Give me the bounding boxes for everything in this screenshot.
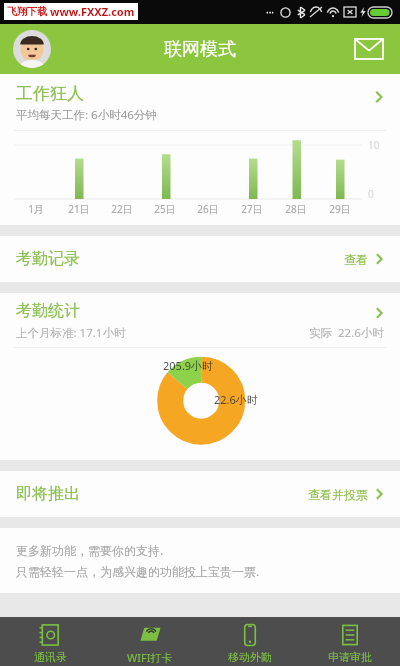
staticText: 22日 xyxy=(111,202,133,216)
button[interactable]: Messages xyxy=(352,32,386,66)
staticText: 飞翔下载 xyxy=(7,5,47,18)
staticText: 即将推出 xyxy=(16,484,80,504)
staticText: 查看并投票 xyxy=(308,487,368,502)
staticText: 上个月标准: 17.1小时 xyxy=(16,325,126,341)
staticText: 只需轻轻一点，为感兴趣的功能投上宝贵一票. xyxy=(16,563,260,579)
button[interactable]: 通讯录 xyxy=(0,617,100,666)
staticText: 10 xyxy=(368,138,380,152)
staticText: 平均每天工作: 6小时46分钟 xyxy=(16,107,157,123)
staticText: 联网模式 xyxy=(164,38,236,61)
staticText: 工作狂人 xyxy=(16,83,84,104)
button[interactable]: 申请审批 xyxy=(300,617,400,666)
button[interactable]: WIFI打卡 xyxy=(100,617,200,666)
staticText: 实际 22.6小时 xyxy=(309,325,384,341)
staticText: 更多新功能，需要你的支持. xyxy=(16,542,164,558)
button[interactable]: 移动外勤 xyxy=(200,617,300,666)
staticText: 26日 xyxy=(197,202,219,216)
staticText: 考勤统计 xyxy=(16,301,80,321)
staticText: 0 xyxy=(368,187,374,201)
button[interactable]: 即将推出 xyxy=(0,471,400,517)
staticText: 通讯录 xyxy=(34,650,67,664)
staticText: 22.6小时 xyxy=(214,392,258,407)
staticText: 29日 xyxy=(329,202,351,216)
staticText: 27日 xyxy=(241,202,263,216)
staticText: www.FXXZ.com xyxy=(50,4,135,19)
button[interactable]: 考勤统计 xyxy=(0,293,400,460)
staticText: 申请审批 xyxy=(328,650,372,664)
staticText: 查看 xyxy=(344,252,368,267)
staticText: 28日 xyxy=(285,202,307,216)
button[interactable]: Profile xyxy=(13,30,51,68)
staticText: 考勤记录 xyxy=(16,249,80,269)
staticText: 1月 xyxy=(28,202,44,216)
button[interactable]: 考勤记录 xyxy=(0,236,400,282)
staticText: 移动外勤 xyxy=(228,650,272,664)
staticText: ··· xyxy=(266,5,275,19)
staticText: 25日 xyxy=(154,202,176,216)
staticText: 21日 xyxy=(68,202,90,216)
staticText: WIFI打卡 xyxy=(127,650,173,665)
button[interactable]: 工作狂人 xyxy=(0,74,400,225)
staticText: 205.9小时 xyxy=(163,358,214,373)
